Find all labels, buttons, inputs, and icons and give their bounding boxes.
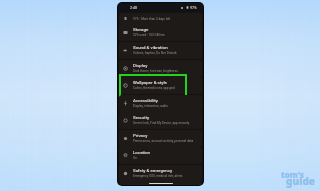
button[interactable]: 97% - More than 2 days left xyxy=(119,13,202,24)
staticText: tom's xyxy=(281,169,304,180)
button[interactable]: Privacy xyxy=(119,130,202,147)
staticText: Wallpaper & style xyxy=(133,80,167,85)
staticText: Location xyxy=(133,150,151,155)
button[interactable]: Accessibility xyxy=(119,95,202,112)
button[interactable]: Storage xyxy=(119,24,202,41)
staticText: Colors, themed icons, app grid xyxy=(133,86,175,90)
button[interactable]: Wallpaper & style xyxy=(119,77,202,94)
staticText: Safety & emergency xyxy=(133,168,173,173)
button[interactable]: Safety & emergency xyxy=(119,165,202,182)
staticText: 2:48 xyxy=(130,6,137,10)
staticText: Privacy xyxy=(133,133,148,138)
button[interactable]: Sound & vibration xyxy=(119,42,202,59)
button[interactable]: Display xyxy=(119,60,202,77)
staticText: Storage xyxy=(133,27,149,32)
staticText: Emergency SOS, medical info, alerts xyxy=(133,174,183,178)
staticText: Permissions, account activity, personal … xyxy=(133,139,194,143)
staticText: Security xyxy=(133,115,150,120)
staticText: Volume, haptics, Do Not Disturb xyxy=(133,51,177,55)
staticText: Display xyxy=(133,63,148,68)
staticText: Sound & vibration xyxy=(133,45,168,50)
button[interactable]: Location xyxy=(119,147,202,164)
staticText: 97% xyxy=(190,6,197,10)
staticText: Dark theme, font size, brightness xyxy=(133,69,178,73)
staticText: Accessibility xyxy=(133,98,158,103)
staticText: 52% used - 103 GB free xyxy=(133,33,165,37)
button[interactable]: Security xyxy=(119,112,202,129)
staticText: Screen lock, Find My Device, app securit… xyxy=(133,121,190,125)
staticText: On xyxy=(133,156,137,160)
staticText: guide xyxy=(286,174,315,188)
staticText: 97% - More than 2 days left xyxy=(133,17,171,21)
staticText: Display, interaction, audio xyxy=(133,104,168,108)
button[interactable]: System xyxy=(119,182,202,185)
